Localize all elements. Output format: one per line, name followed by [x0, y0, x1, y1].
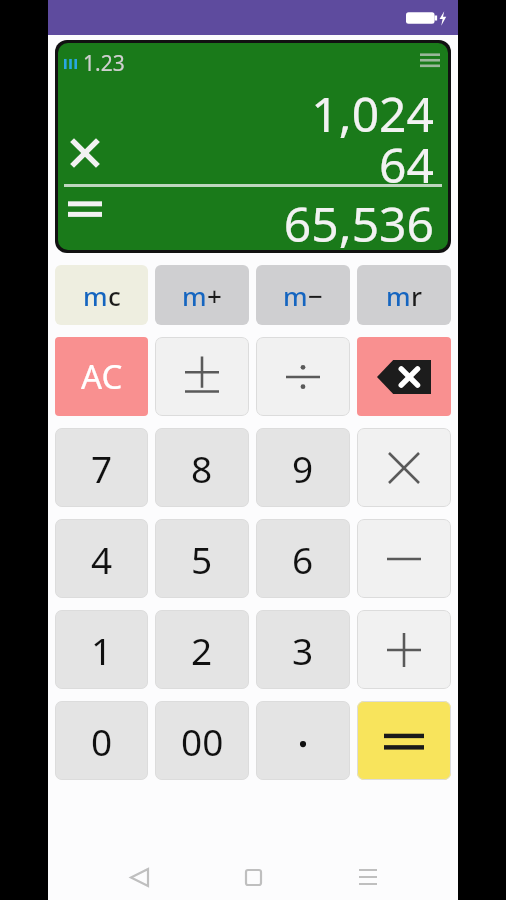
staticText: 1.23 — [83, 49, 125, 78]
staticText: 1,024 — [311, 81, 434, 146]
button[interactable]: 1 — [55, 610, 148, 689]
button[interactable]: Back — [115, 854, 163, 900]
button[interactable]: Home — [229, 854, 277, 900]
button[interactable]: Operator — [357, 519, 451, 598]
staticText: + — [207, 278, 222, 313]
staticText: m — [283, 278, 308, 313]
button[interactable]: 00 — [155, 701, 249, 780]
button[interactable]: Equals — [357, 701, 451, 780]
staticText: m — [83, 278, 108, 313]
staticText: 6 — [292, 534, 314, 584]
button[interactable]: 8 — [155, 428, 249, 507]
button[interactable]: Decimal point — [256, 701, 350, 780]
staticText: c — [108, 278, 121, 313]
staticText: AC — [81, 354, 123, 399]
button[interactable]: m — [256, 265, 350, 325]
button[interactable]: 0 — [55, 701, 148, 780]
staticText: r — [411, 278, 422, 313]
staticText: m — [386, 278, 411, 313]
staticText: 5 — [191, 534, 213, 584]
button[interactable]: 2 — [155, 610, 249, 689]
button[interactable]: 6 — [256, 519, 350, 598]
staticText: − — [308, 278, 323, 313]
staticText: 8 — [191, 443, 213, 493]
button[interactable]: Recent apps — [344, 854, 392, 900]
button[interactable]: Divide — [256, 337, 350, 416]
staticText: 0 — [91, 716, 113, 766]
staticText: 64 — [379, 132, 434, 197]
button[interactable]: Menu — [417, 49, 443, 75]
staticText: 65,536 — [283, 191, 434, 250]
staticText: 4 — [91, 534, 113, 584]
button[interactable]: 1.23 — [58, 43, 448, 250]
button[interactable]: Operator — [357, 610, 451, 689]
staticText: 1 — [91, 625, 113, 675]
button[interactable]: Operator — [357, 428, 451, 507]
button[interactable]: 5 — [155, 519, 249, 598]
button[interactable]: Backspace — [357, 337, 451, 416]
button[interactable]: 3 — [256, 610, 350, 689]
button[interactable]: 7 — [55, 428, 148, 507]
staticText: 2 — [191, 625, 213, 675]
staticText: 9 — [292, 443, 314, 493]
button[interactable]: 4 — [55, 519, 148, 598]
staticText: 3 — [292, 625, 314, 675]
staticText: 00 — [181, 716, 224, 766]
staticText: m — [182, 278, 207, 313]
button[interactable]: Plus minus — [155, 337, 249, 416]
button[interactable]: m — [155, 265, 249, 325]
button[interactable]: m — [357, 265, 451, 325]
button[interactable]: m — [55, 265, 148, 325]
button[interactable]: AC — [55, 337, 148, 416]
staticText: 7 — [91, 443, 113, 493]
button[interactable]: 9 — [256, 428, 350, 507]
